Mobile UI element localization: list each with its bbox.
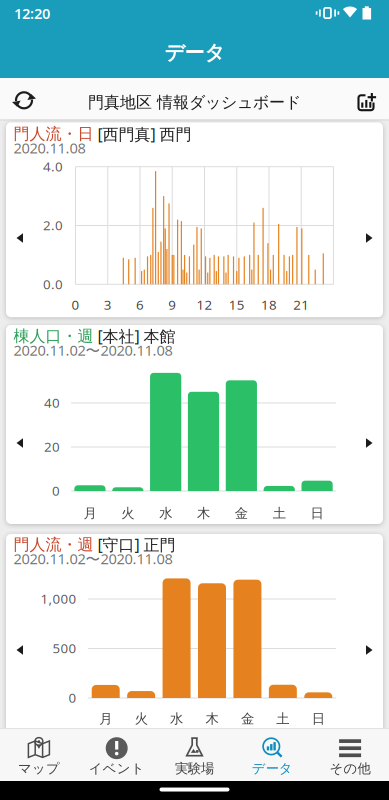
staticText: 日 [311, 505, 324, 521]
button[interactable]: イベント [78, 728, 156, 781]
staticText: 18 [261, 296, 277, 313]
staticText: 2020.11.02〜2020.11.08 [13, 549, 172, 568]
staticText: 水 [159, 505, 172, 521]
staticText: 0 [52, 482, 60, 499]
button[interactable]: 更新 [0, 78, 46, 119]
staticText: マップ [18, 760, 60, 777]
staticText: 日 [312, 711, 325, 727]
staticText: 2020.11.08 [13, 138, 85, 157]
staticText: 12 [196, 296, 212, 313]
staticText: 門真地区 情報ダッシュボード [88, 92, 301, 112]
staticText: 500 [52, 639, 76, 657]
button[interactable]: 次のグラフ [355, 636, 383, 664]
staticText: 土 [273, 505, 286, 521]
button[interactable]: その他 [311, 728, 389, 781]
staticText: 月 [99, 711, 112, 727]
button[interactable]: 実験場 [156, 728, 233, 781]
staticText: データ [252, 760, 293, 777]
staticText: 水 [170, 711, 183, 727]
staticText: 21 [293, 296, 309, 313]
staticText: 40 [44, 394, 60, 411]
staticText: その他 [330, 760, 371, 777]
staticText: [西門真] 西門 [93, 123, 191, 144]
staticText: 月 [83, 505, 96, 521]
staticText: データ [164, 40, 224, 65]
staticText: 木 [197, 505, 210, 521]
staticText: 0.0 [43, 275, 63, 293]
staticText: 2020.11.02〜2020.11.08 [13, 340, 172, 360]
staticText: 6 [136, 296, 144, 313]
staticText: 金 [241, 711, 254, 727]
staticText: 1,000 [40, 590, 76, 607]
staticText: 15 [229, 296, 245, 313]
staticText: 実験場 [175, 760, 214, 777]
button[interactable]: 前のグラフ [6, 636, 34, 664]
staticText: 火 [135, 711, 148, 727]
button[interactable]: 前のグラフ [6, 429, 34, 457]
staticText: 門人流・週 [13, 535, 93, 554]
button[interactable]: 次のグラフ [355, 429, 383, 457]
button[interactable]: マップ [0, 728, 78, 781]
staticText: 棟人口・週 [13, 326, 93, 346]
button[interactable]: 次のグラフ [355, 224, 383, 252]
staticText: [本社] 本館 [93, 325, 175, 347]
staticText: 0 [68, 689, 76, 706]
staticText: 門人流・日 [13, 124, 93, 144]
staticText: 2.0 [43, 216, 63, 234]
staticText: 金 [235, 505, 248, 521]
staticText: 9 [168, 296, 176, 313]
staticText: 木 [205, 711, 218, 727]
button[interactable]: データ [233, 728, 311, 781]
staticText: イベント [89, 760, 145, 777]
staticText: 12:20 [14, 3, 50, 23]
staticText: 火 [121, 505, 134, 521]
staticText: 4.0 [43, 157, 63, 175]
staticText: 3 [104, 296, 112, 313]
staticText: 20 [44, 438, 60, 455]
staticText: 0 [71, 296, 79, 313]
staticText: 土 [276, 711, 289, 727]
button[interactable]: 前のグラフ [6, 224, 34, 252]
button[interactable]: グラフを追加 [343, 78, 389, 119]
staticText: [守口] 正門 [93, 534, 175, 555]
